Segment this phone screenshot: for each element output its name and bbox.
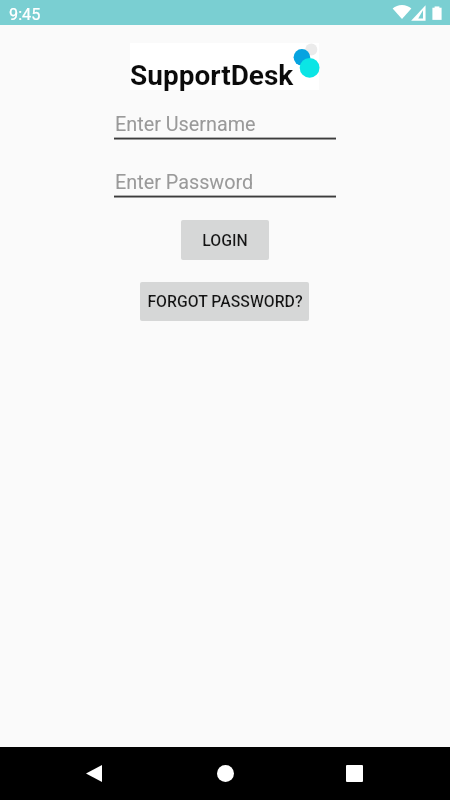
staticText: LOGIN — [202, 231, 248, 250]
button[interactable]: Enter Username — [114, 105, 336, 142]
staticText: SupportDesk — [130, 59, 294, 92]
staticText: Enter Password — [115, 171, 254, 194]
staticText: FORGOT PASSWORD? — [147, 292, 303, 311]
button[interactable]: FORGOT PASSWORD? — [140, 282, 309, 321]
button[interactable]: Back — [74, 753, 114, 793]
button[interactable]: Enter Password — [114, 163, 336, 200]
staticText: 9:45 — [9, 5, 41, 24]
button[interactable]: Home — [205, 753, 245, 793]
staticText: Enter Username — [115, 113, 256, 136]
button[interactable]: LOGIN — [181, 220, 269, 260]
button[interactable]: Recent apps — [334, 753, 374, 793]
